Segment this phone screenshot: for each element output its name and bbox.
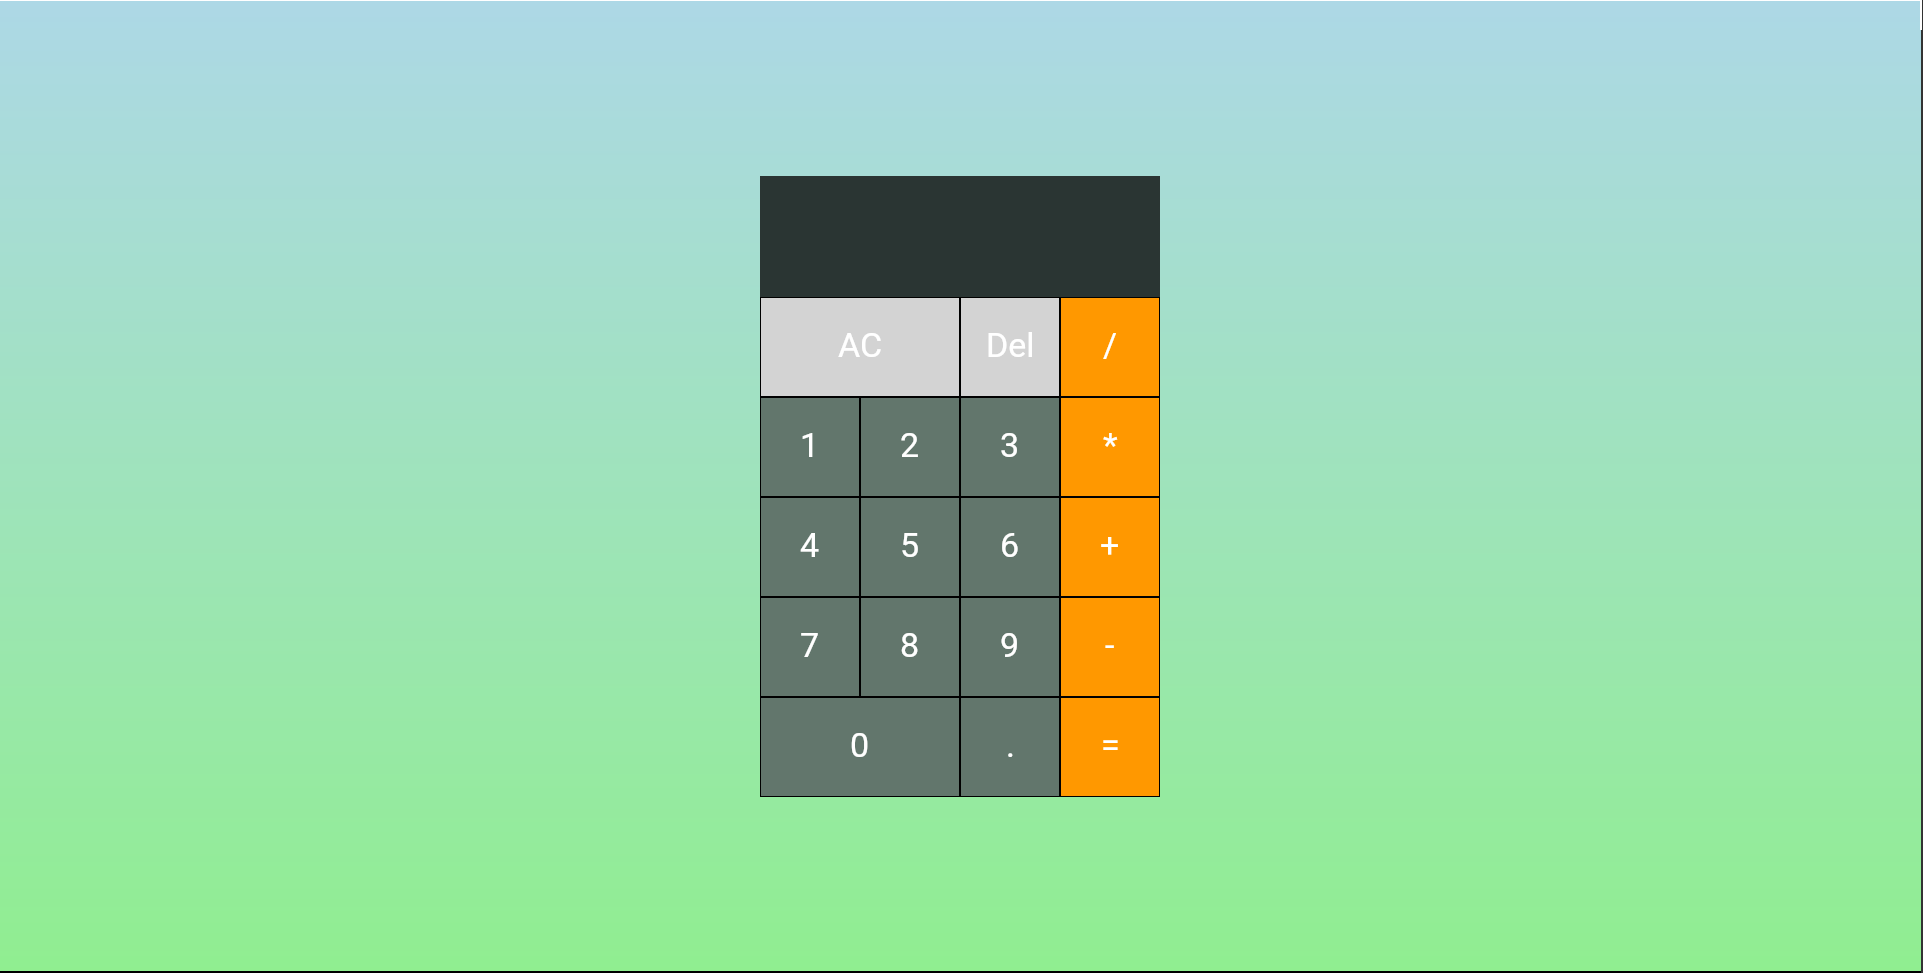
button[interactable]: 0 xyxy=(760,697,960,797)
button[interactable]: Equals xyxy=(1060,697,1160,797)
button[interactable]: 2 xyxy=(860,397,960,497)
staticText: 0 xyxy=(850,725,870,765)
button[interactable]: 9 xyxy=(960,597,1060,697)
staticText: + xyxy=(1100,525,1120,565)
staticText: 8 xyxy=(900,625,920,665)
button[interactable]: Subtract xyxy=(1060,597,1160,697)
staticText: 5 xyxy=(900,525,920,565)
button[interactable]: Del xyxy=(960,297,1060,397)
button[interactable]: 1 xyxy=(760,397,860,497)
button[interactable]: Divide xyxy=(1060,297,1160,397)
button[interactable]: Multiply xyxy=(1060,397,1160,497)
button[interactable]: 3 xyxy=(960,397,1060,497)
staticText: - xyxy=(1105,625,1115,665)
staticText: = xyxy=(1101,725,1120,765)
staticText: 6 xyxy=(1000,525,1020,565)
staticText: 7 xyxy=(800,625,820,665)
staticText: 3 xyxy=(1000,425,1020,465)
staticText: Del xyxy=(986,325,1035,365)
staticText: 2 xyxy=(900,425,920,465)
button[interactable]: 8 xyxy=(860,597,960,697)
button[interactable]: Decimal point xyxy=(960,697,1060,797)
staticText: 9 xyxy=(1000,625,1020,665)
button[interactable]: 5 xyxy=(860,497,960,597)
button[interactable]: 6 xyxy=(960,497,1060,597)
staticText: . xyxy=(1006,725,1015,765)
button[interactable]: 4 xyxy=(760,497,860,597)
staticText: / xyxy=(1103,325,1118,365)
staticText: * xyxy=(1103,425,1118,465)
staticText: 1 xyxy=(800,425,820,465)
staticText: AC xyxy=(838,325,883,365)
button[interactable]: 7 xyxy=(760,597,860,697)
button[interactable]: Add xyxy=(1060,497,1160,597)
button[interactable]: AC xyxy=(760,297,960,397)
staticText: 4 xyxy=(800,525,820,565)
